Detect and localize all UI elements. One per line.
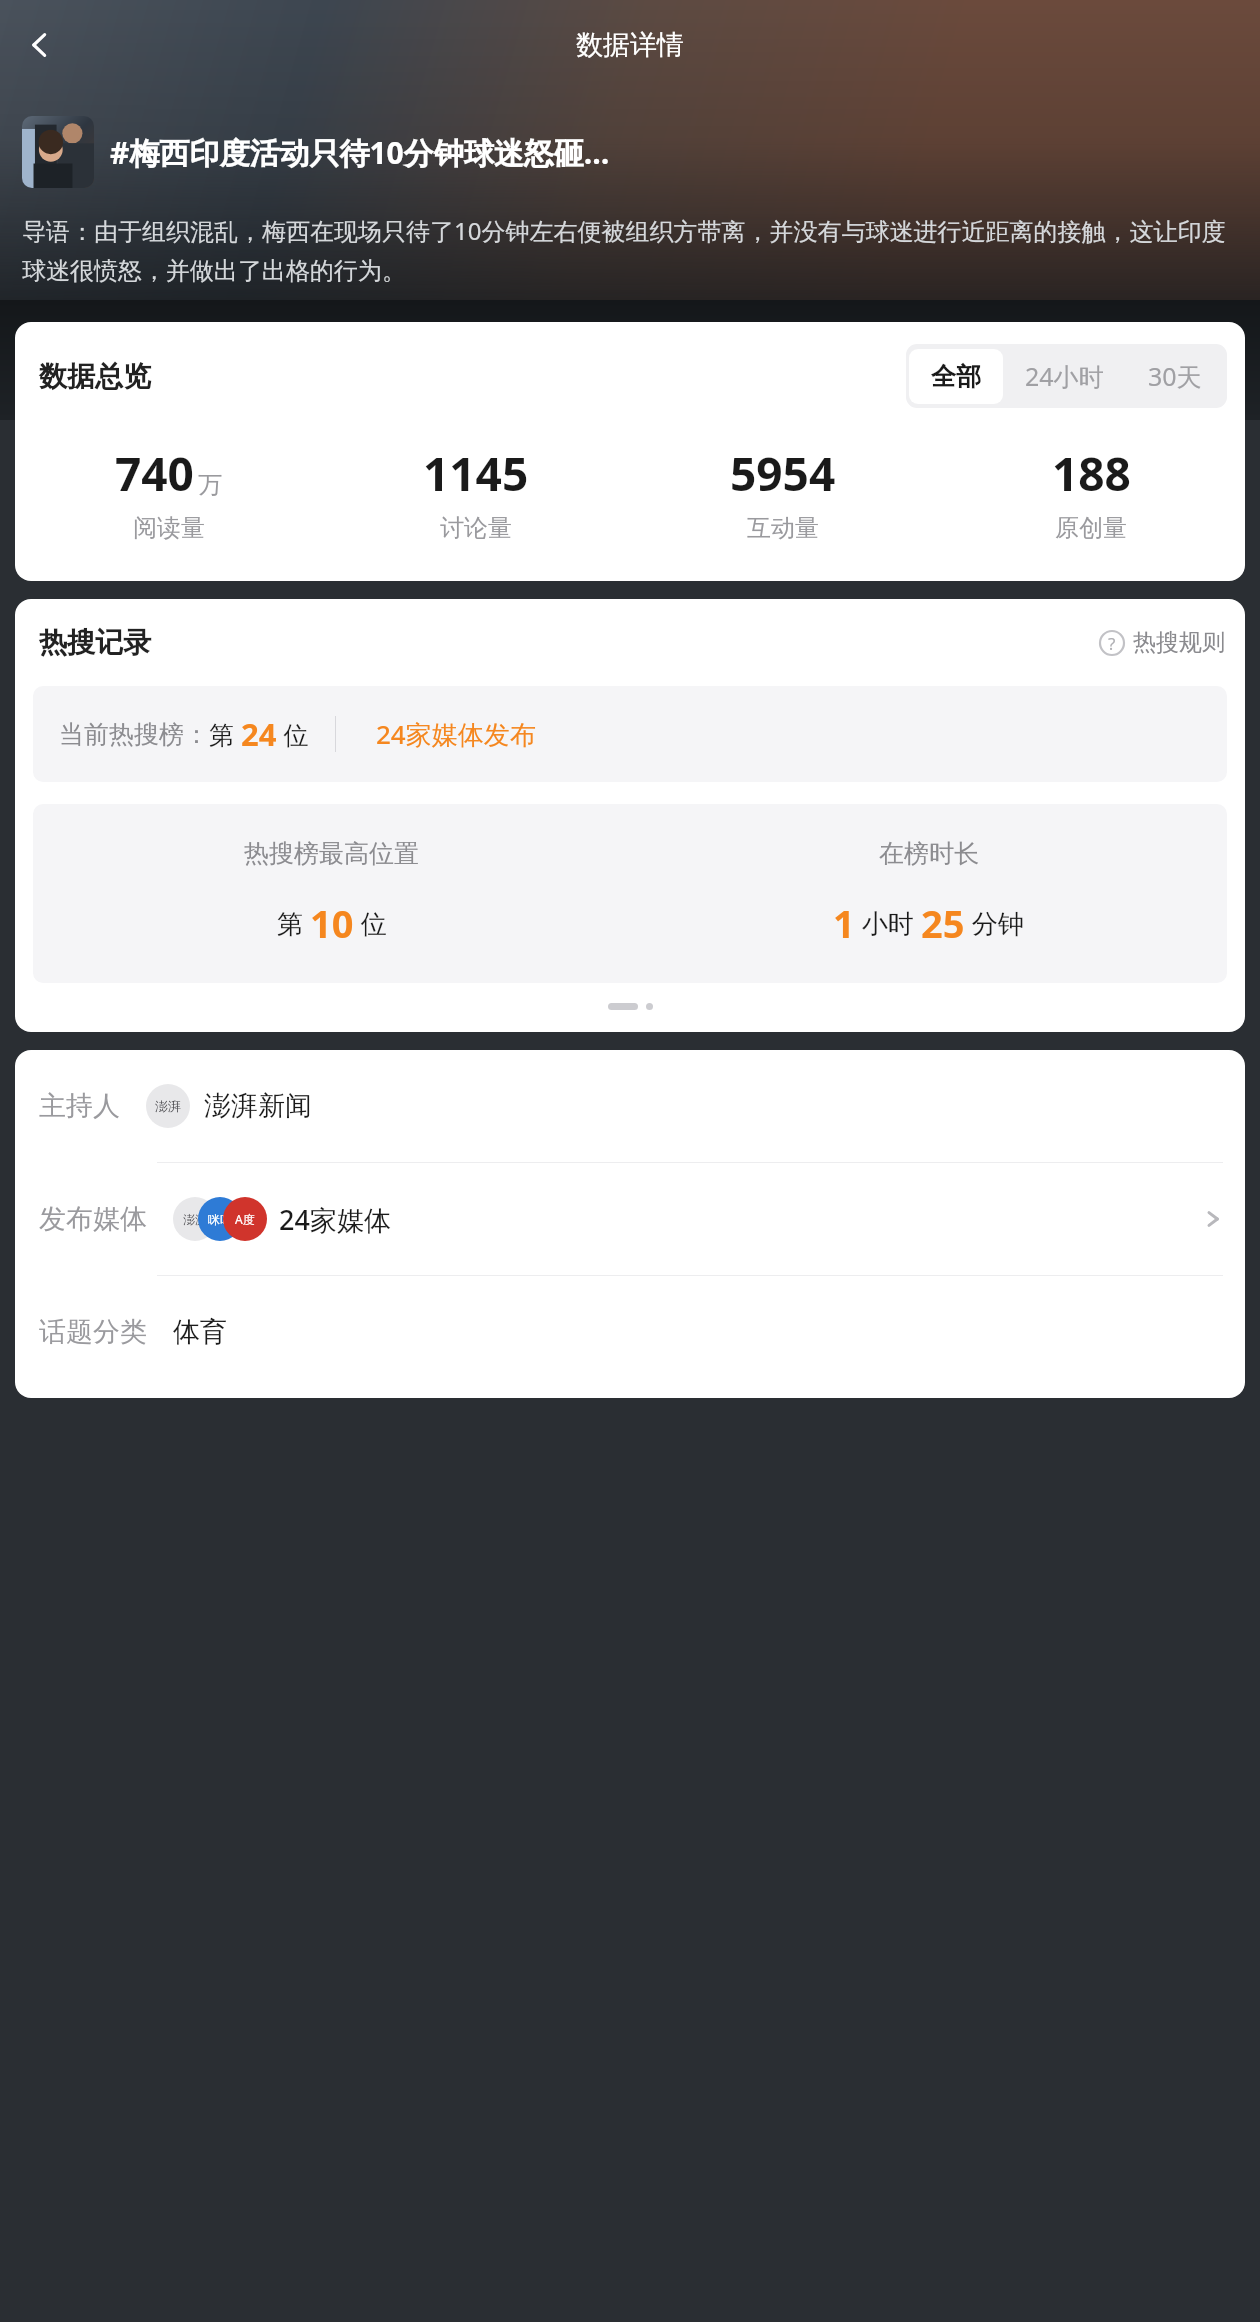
staticText: 24小时 xyxy=(1025,359,1104,393)
staticText: 分钟 xyxy=(965,905,1024,941)
button[interactable]: 5954 xyxy=(629,442,937,543)
staticText: 主持人 xyxy=(39,1089,120,1123)
button[interactable]: 话题分类 xyxy=(15,1276,1245,1388)
staticText: 话题分类 xyxy=(39,1315,147,1349)
staticText: 第 xyxy=(277,905,310,941)
staticText: 第 xyxy=(209,717,241,751)
staticText: A度 xyxy=(235,1211,255,1227)
staticText: 原创量 xyxy=(1055,513,1127,543)
staticText: 数据详情 xyxy=(576,28,684,62)
staticText: 位 xyxy=(277,717,309,751)
staticText: 1145 xyxy=(423,442,529,505)
staticText: 位 xyxy=(354,905,387,941)
button[interactable]: 740 xyxy=(15,442,322,543)
staticText: 当前热搜榜： xyxy=(59,719,209,750)
staticText: 讨论量 xyxy=(440,513,512,543)
staticText: 数据总览 xyxy=(39,359,151,394)
staticText: 1 xyxy=(833,897,855,949)
button[interactable]: Back xyxy=(12,17,68,73)
button[interactable]: 30天 xyxy=(1126,347,1224,405)
staticText: 万 xyxy=(198,470,222,500)
staticText: 阅读量 xyxy=(133,513,205,543)
staticText: 740 xyxy=(115,442,194,505)
staticText: 热搜榜最高位置 xyxy=(244,838,419,869)
staticText: 30天 xyxy=(1148,359,1202,393)
staticText: 热搜规则 xyxy=(1133,628,1225,657)
staticText: 导语：由于组织混乱，梅西在现场只待了10分钟左右便被组织方带离，并没有与球迷进行… xyxy=(22,214,1238,286)
staticText: ? xyxy=(1108,632,1116,655)
button[interactable]: 1145 xyxy=(322,442,629,543)
button[interactable]: 24小时 xyxy=(1003,347,1126,405)
button[interactable]: 24家媒体发布 xyxy=(376,716,536,752)
button[interactable]: 发布媒体 xyxy=(15,1163,1245,1275)
staticText: 澎湃新闻 xyxy=(204,1089,312,1123)
staticText: 发布媒体 xyxy=(39,1202,147,1236)
staticText: #梅西印度活动只待10分钟球迷怒砸… xyxy=(110,132,610,173)
staticText: 热搜记录 xyxy=(39,625,151,660)
staticText: 澎湃 xyxy=(155,1098,181,1114)
staticText: 5954 xyxy=(730,442,836,505)
button[interactable]: ? xyxy=(1099,628,1225,657)
staticText: 互动量 xyxy=(747,513,819,543)
staticText: 体育 xyxy=(173,1315,227,1349)
staticText: 在榜时长 xyxy=(879,838,979,869)
staticText: 小时 xyxy=(855,905,921,941)
staticText: 24家媒体 xyxy=(279,1201,391,1238)
staticText: 澎湃 xyxy=(183,1212,207,1227)
staticText: 24 xyxy=(241,713,277,755)
staticText: 188 xyxy=(1052,442,1131,505)
button[interactable]: 主持人 xyxy=(15,1050,1245,1162)
button[interactable]: 全部 xyxy=(909,349,1003,404)
staticText: 25 xyxy=(921,897,965,949)
button[interactable]: 188 xyxy=(937,442,1245,543)
staticText: 全部 xyxy=(931,361,981,392)
button[interactable] xyxy=(22,116,94,188)
staticText: 10 xyxy=(310,897,354,949)
staticText: 咪咕 xyxy=(208,1212,232,1227)
